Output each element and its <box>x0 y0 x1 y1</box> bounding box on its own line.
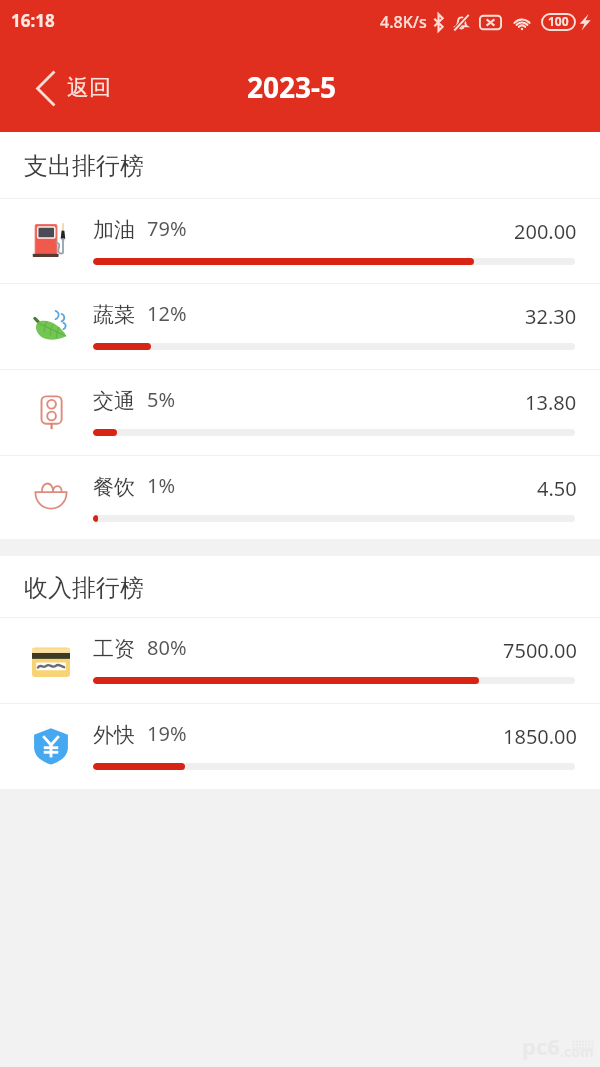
staticText: 4.50 <box>537 475 577 502</box>
staticText: 32.30 <box>525 303 577 330</box>
staticText: 1% <box>147 472 176 499</box>
staticText: 2023-5 <box>247 68 337 106</box>
button[interactable]: 交通 <box>0 370 600 455</box>
staticText: 餐饮 <box>93 474 135 500</box>
staticText: 加油 <box>93 217 135 243</box>
staticText: 5% <box>147 386 176 413</box>
button[interactable]: 返回 <box>0 61 125 116</box>
staticText: 7500.00 <box>503 637 577 664</box>
staticText: 16:18 <box>11 9 55 32</box>
staticText: 13.80 <box>525 389 577 416</box>
other: 返回 <box>36 71 55 106</box>
staticText: 19% <box>147 720 187 747</box>
staticText: 4.8K/s <box>380 11 427 33</box>
staticText: 收入排行榜 <box>24 573 144 603</box>
staticText: 蔬菜 <box>93 302 135 328</box>
button[interactable]: 加油 <box>0 199 600 283</box>
staticText: 支出排行榜 <box>24 151 144 181</box>
staticText: 80% <box>147 634 187 661</box>
button[interactable]: 工资 <box>0 618 600 703</box>
staticText: 12% <box>147 300 187 327</box>
staticText: 工资 <box>93 636 135 662</box>
staticText: pc6 <box>522 1031 560 1061</box>
staticText: 200.00 <box>514 218 577 245</box>
button[interactable]: 餐饮 <box>0 456 600 539</box>
staticText: 79% <box>147 215 187 242</box>
staticText: 返回 <box>67 74 111 102</box>
staticText: 交通 <box>93 388 135 414</box>
button[interactable]: 蔬菜 <box>0 284 600 369</box>
staticText: 1850.00 <box>503 723 577 750</box>
staticText: 100 <box>548 13 569 29</box>
staticText: .com <box>560 1042 594 1061</box>
staticText: 外快 <box>93 722 135 748</box>
button[interactable]: 外快 <box>0 704 600 789</box>
